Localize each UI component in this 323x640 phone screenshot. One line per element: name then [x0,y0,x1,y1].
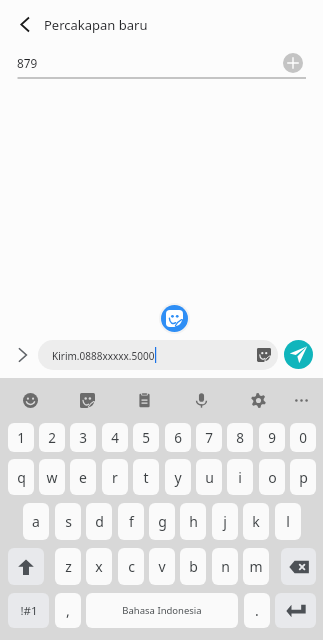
button[interactable]: More options [285,384,317,416]
button[interactable]: 2 [39,423,65,452]
button[interactable]: b [180,548,206,585]
button[interactable]: 4 [102,423,128,452]
button[interactable]: Voice input [185,384,217,416]
button[interactable]: 7 [196,423,222,452]
button[interactable]: j [212,503,238,540]
staticText: !#1 [20,603,38,619]
button[interactable]: d [86,503,112,540]
staticText: , [66,601,70,620]
button[interactable]: w [39,459,65,495]
staticText: l [286,512,290,531]
button[interactable]: f [118,503,144,540]
staticText: 5 [142,429,150,447]
button[interactable]: 5 [133,423,159,452]
button[interactable]: 3 [70,423,96,452]
button[interactable]: a [23,503,49,540]
button[interactable]: Settings [242,384,274,416]
button[interactable]: n [212,548,238,585]
button[interactable]: Stickers [161,305,188,332]
staticText: Bahasa Indonesia [122,604,202,617]
button[interactable]: g [149,503,175,540]
staticText: . [255,601,259,620]
button[interactable]: s [55,503,81,540]
staticText: m [249,557,263,576]
staticText: s [65,512,72,531]
button[interactable]: 9 [259,423,285,452]
staticText: r [112,468,118,487]
button[interactable]: 6 [165,423,191,452]
staticText: p [299,468,308,487]
staticText: 2 [48,429,56,447]
button[interactable]: h [180,503,206,540]
button[interactable]: v [149,548,175,585]
button[interactable]: Add recipient [283,53,303,73]
button[interactable]: x [86,548,112,585]
button[interactable]: z [55,548,81,585]
staticText: 3 [79,429,87,447]
button[interactable]: p [290,459,316,495]
staticText: q [17,468,26,487]
button[interactable]: k [243,503,269,540]
button[interactable]: Back [10,12,35,37]
staticText: i [238,468,242,487]
button[interactable]: l [275,503,301,540]
button[interactable]: Enter [275,593,316,628]
button[interactable]: Expand options [11,343,35,367]
button[interactable]: 0 [290,423,316,452]
staticText: 0 [299,429,307,447]
staticText: z [65,557,72,576]
staticText: c [128,557,135,576]
staticText: o [268,468,277,487]
button[interactable]: Shift [8,548,44,585]
staticText: Kirim.0888xxxxx.5000 [52,349,155,363]
button[interactable]: 1 [8,423,34,452]
staticText: f [129,512,134,531]
staticText: 4 [111,429,119,447]
staticText: 879 [17,55,38,71]
staticText: e [79,468,87,487]
button[interactable]: i [227,459,253,495]
staticText: Percakapan baru [44,16,148,34]
button[interactable]: . [244,593,270,628]
button[interactable]: Clipboard [128,384,160,416]
button[interactable]: Stickers [71,384,103,416]
button[interactable]: , [55,593,81,628]
staticText: n [221,557,230,576]
button[interactable]: q [8,459,34,495]
staticText: k [252,512,260,531]
staticText: 6 [174,429,182,447]
staticText: b [189,557,198,576]
button[interactable]: t [133,459,159,495]
staticText: t [143,468,149,487]
button[interactable]: Emoji [14,384,46,416]
staticText: d [95,512,104,531]
staticText: 8 [236,429,244,447]
button[interactable]: !#1 [8,593,49,628]
staticText: j [223,512,227,531]
staticText: w [46,468,58,487]
button[interactable]: e [70,459,96,495]
button[interactable]: m [243,548,269,585]
staticText: a [32,512,40,531]
staticText: h [189,512,198,531]
button[interactable]: Kirim.0888xxxxx.5000 [38,340,278,370]
button[interactable]: Backspace [281,548,316,585]
staticText: u [205,468,214,487]
button[interactable]: c [118,548,144,585]
staticText: 1 [17,429,25,447]
button[interactable]: u [196,459,222,495]
button[interactable]: Send [284,340,313,369]
staticText: g [158,512,167,531]
staticText: 7 [205,429,213,447]
staticText: y [174,468,182,487]
button[interactable]: r [102,459,128,495]
button[interactable]: y [165,459,191,495]
button[interactable]: 8 [227,423,253,452]
button[interactable]: o [259,459,285,495]
staticText: 9 [268,429,276,447]
staticText: x [95,557,103,576]
button[interactable]: Bahasa Indonesia [86,593,238,628]
staticText: v [158,557,166,576]
